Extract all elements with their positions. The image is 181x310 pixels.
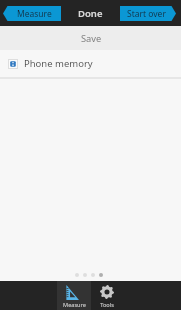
staticText: Phone memory bbox=[24, 57, 93, 70]
button[interactable]: Measure bbox=[3, 6, 61, 21]
staticText: Measure bbox=[17, 8, 52, 20]
staticText: Measure bbox=[63, 301, 86, 309]
button[interactable]: Start over bbox=[120, 6, 176, 21]
staticText: Start over bbox=[127, 8, 166, 20]
button[interactable]: Measure bbox=[57, 281, 91, 310]
staticText: Save bbox=[81, 32, 102, 45]
button[interactable]: Phone memory bbox=[0, 50, 181, 79]
staticText: Done bbox=[78, 7, 103, 20]
button[interactable]: Tools bbox=[91, 281, 125, 310]
staticText: Tools bbox=[100, 301, 114, 309]
